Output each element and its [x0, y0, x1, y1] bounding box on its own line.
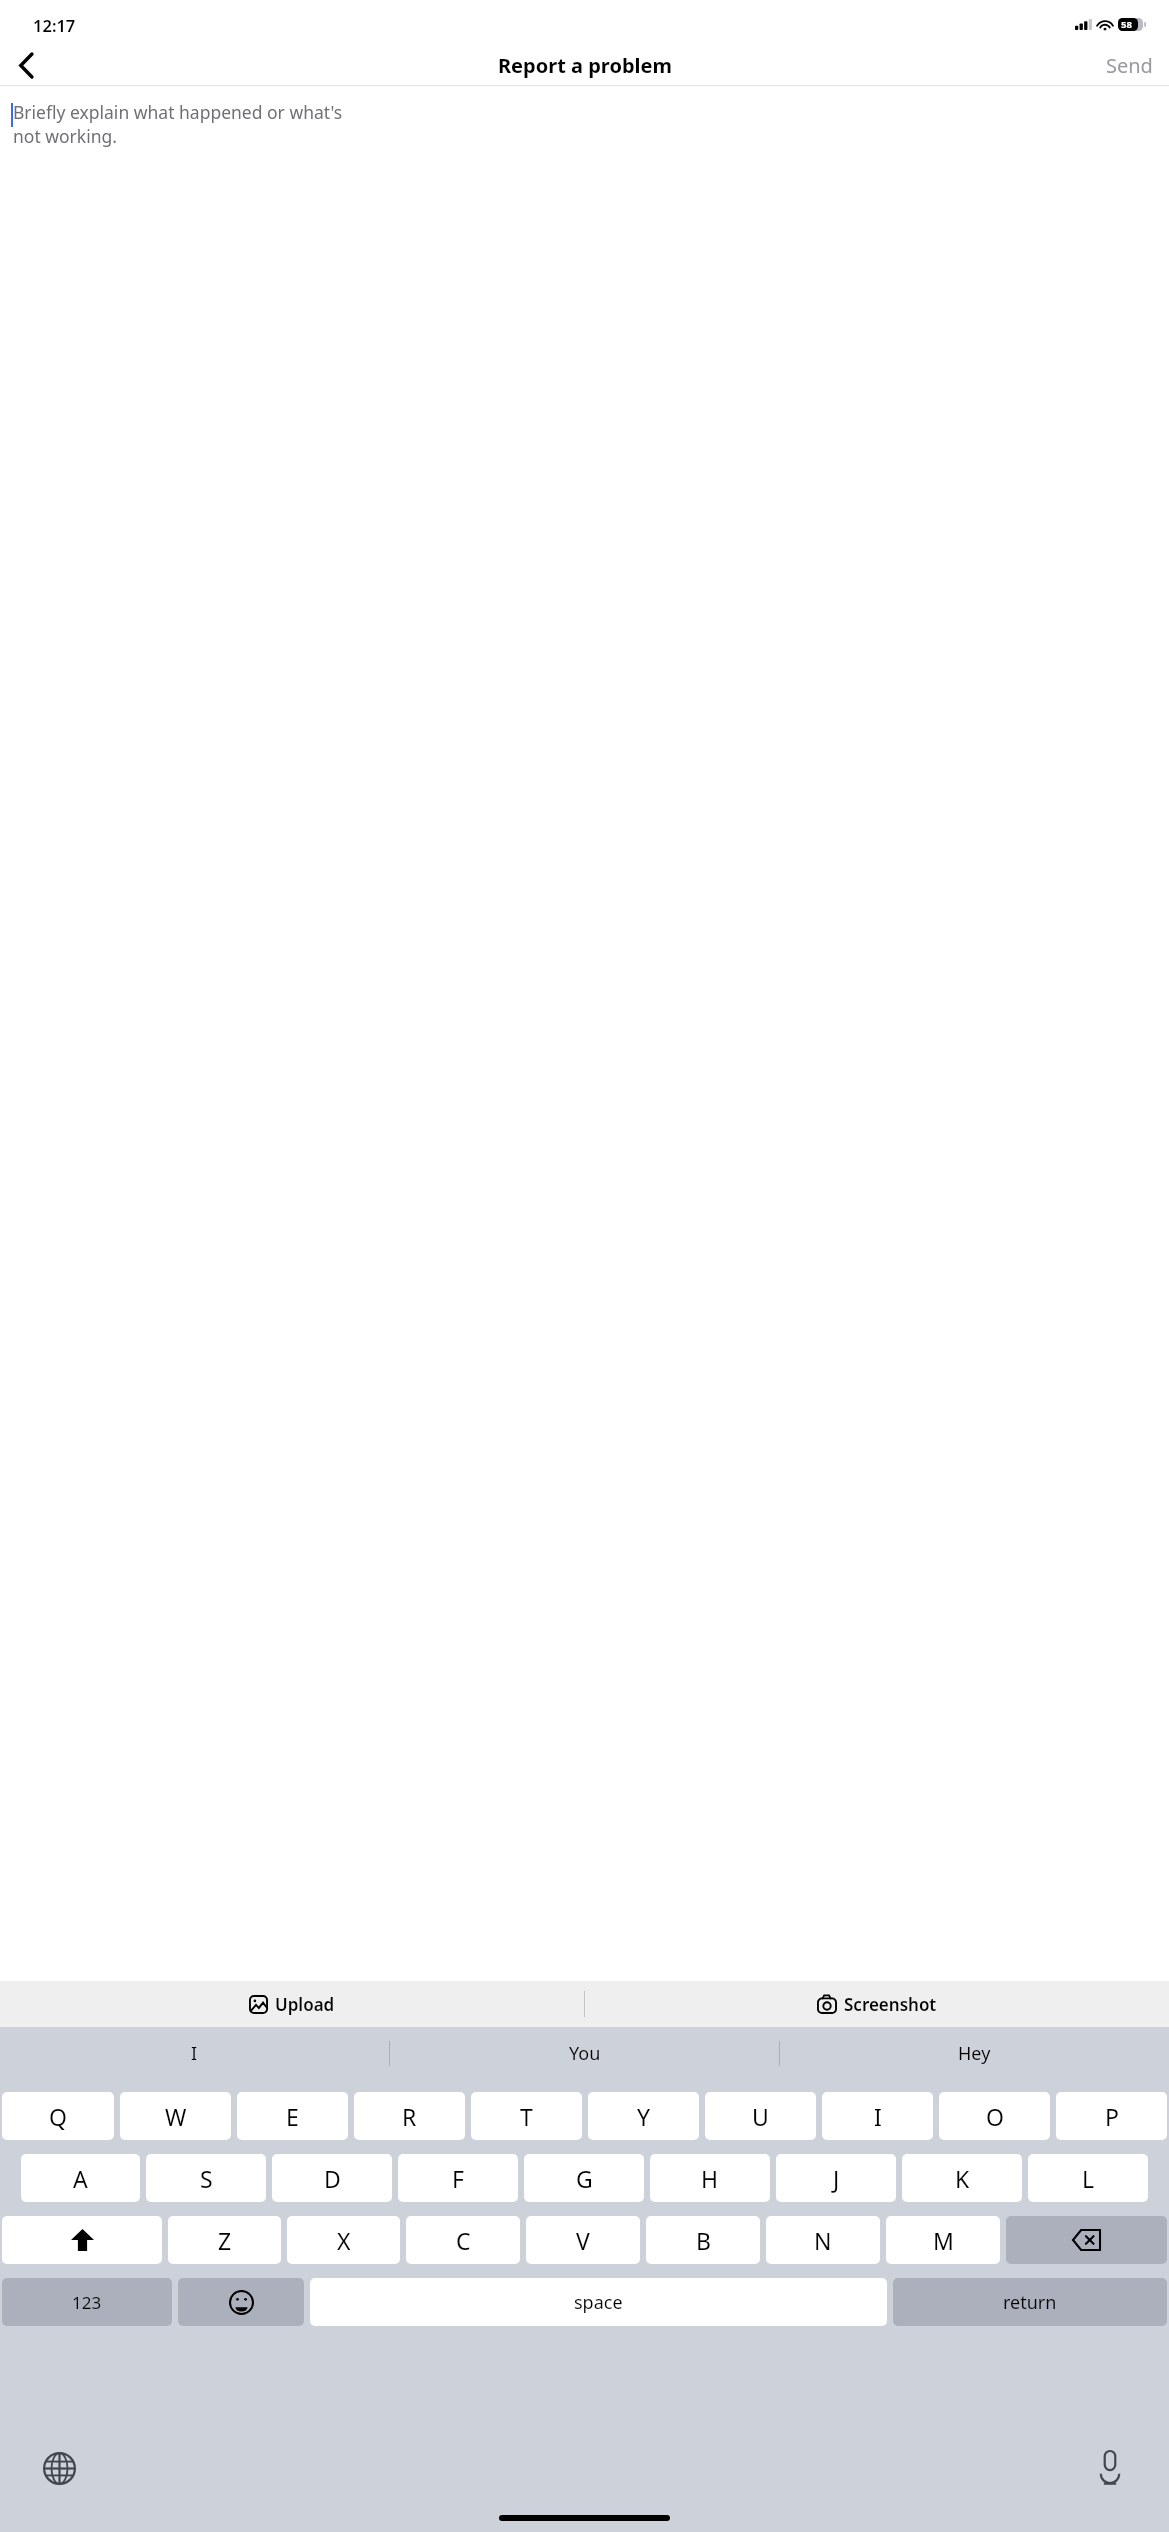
staticText: space: [574, 2290, 623, 2315]
staticText: A: [73, 2163, 88, 2194]
button[interactable]: Hey: [780, 2027, 1169, 2079]
staticText: Q: [49, 2101, 67, 2132]
staticText: Z: [218, 2225, 232, 2256]
button[interactable]: space: [310, 2278, 887, 2326]
staticText: return: [1003, 2290, 1057, 2315]
staticText: V: [576, 2225, 590, 2256]
button[interactable]: B: [646, 2216, 760, 2264]
button[interactable]: I: [0, 2027, 389, 2079]
button[interactable]: R: [354, 2092, 465, 2140]
button[interactable]: K: [902, 2154, 1022, 2202]
staticText: X: [337, 2225, 351, 2256]
staticText: M: [933, 2225, 954, 2256]
button[interactable]: Dictation: [1084, 2442, 1136, 2494]
staticText: You: [569, 2041, 601, 2066]
staticText: J: [833, 2163, 840, 2194]
staticText: R: [402, 2101, 417, 2132]
button[interactable]: Y: [588, 2092, 699, 2140]
button[interactable]: F: [398, 2154, 518, 2202]
staticText: K: [955, 2163, 970, 2194]
staticText: I: [874, 2101, 882, 2132]
staticText: D: [324, 2163, 341, 2194]
staticText: O: [986, 2101, 1004, 2132]
button[interactable]: Screenshot: [585, 1981, 1169, 2027]
button[interactable]: U: [705, 2092, 816, 2140]
button[interactable]: T: [471, 2092, 582, 2140]
button[interactable]: H: [650, 2154, 770, 2202]
button[interactable]: G: [524, 2154, 644, 2202]
button[interactable]: Switch keyboard language: [33, 2442, 85, 2494]
button[interactable]: A: [21, 2154, 140, 2202]
button[interactable]: M: [886, 2216, 1000, 2264]
button[interactable]: E: [237, 2092, 348, 2140]
staticText: Upload: [275, 1993, 335, 2016]
button[interactable]: return: [893, 2278, 1167, 2326]
staticText: Send: [1106, 52, 1153, 79]
button[interactable]: P: [1056, 2092, 1167, 2140]
staticText: Briefly explain what happened or what's …: [13, 100, 343, 148]
staticText: N: [814, 2225, 832, 2256]
staticText: Hey: [958, 2041, 991, 2066]
button[interactable]: Briefly explain what happened or what's …: [0, 86, 1169, 474]
button[interactable]: You: [390, 2027, 779, 2079]
staticText: E: [286, 2101, 299, 2132]
staticText: 58: [1121, 18, 1132, 31]
button[interactable]: Back: [4, 45, 48, 85]
staticText: W: [165, 2101, 187, 2132]
button[interactable]: Upload: [0, 1981, 584, 2027]
staticText: B: [696, 2225, 711, 2256]
button[interactable]: Q: [2, 2092, 114, 2140]
button[interactable]: S: [146, 2154, 266, 2202]
button[interactable]: D: [272, 2154, 392, 2202]
staticText: Report a problem: [498, 52, 672, 79]
staticText: Screenshot: [844, 1993, 937, 2016]
button[interactable]: Shift: [2, 2216, 162, 2264]
button[interactable]: W: [120, 2092, 231, 2140]
staticText: 12:17: [33, 14, 76, 36]
staticText: P: [1105, 2101, 1119, 2132]
staticText: G: [576, 2163, 593, 2194]
button[interactable]: Emoji: [178, 2278, 304, 2326]
staticText: I: [191, 2041, 198, 2066]
button[interactable]: N: [766, 2216, 880, 2264]
button[interactable]: X: [287, 2216, 400, 2264]
staticText: Y: [637, 2101, 651, 2132]
staticText: S: [200, 2163, 213, 2194]
button[interactable]: C: [406, 2216, 520, 2264]
staticText: 123: [72, 2291, 102, 2314]
staticText: L: [1082, 2163, 1095, 2194]
button[interactable]: O: [939, 2092, 1050, 2140]
staticText: F: [452, 2163, 464, 2194]
button[interactable]: V: [526, 2216, 640, 2264]
button[interactable]: Z: [168, 2216, 281, 2264]
button[interactable]: Backspace: [1006, 2216, 1167, 2264]
staticText: T: [520, 2101, 533, 2132]
staticText: H: [701, 2163, 719, 2194]
button[interactable]: L: [1028, 2154, 1148, 2202]
button[interactable]: J: [776, 2154, 896, 2202]
staticText: U: [752, 2101, 769, 2132]
button[interactable]: Send: [1090, 46, 1169, 85]
staticText: C: [456, 2225, 471, 2256]
button[interactable]: 123: [2, 2278, 172, 2326]
button[interactable]: I: [822, 2092, 933, 2140]
